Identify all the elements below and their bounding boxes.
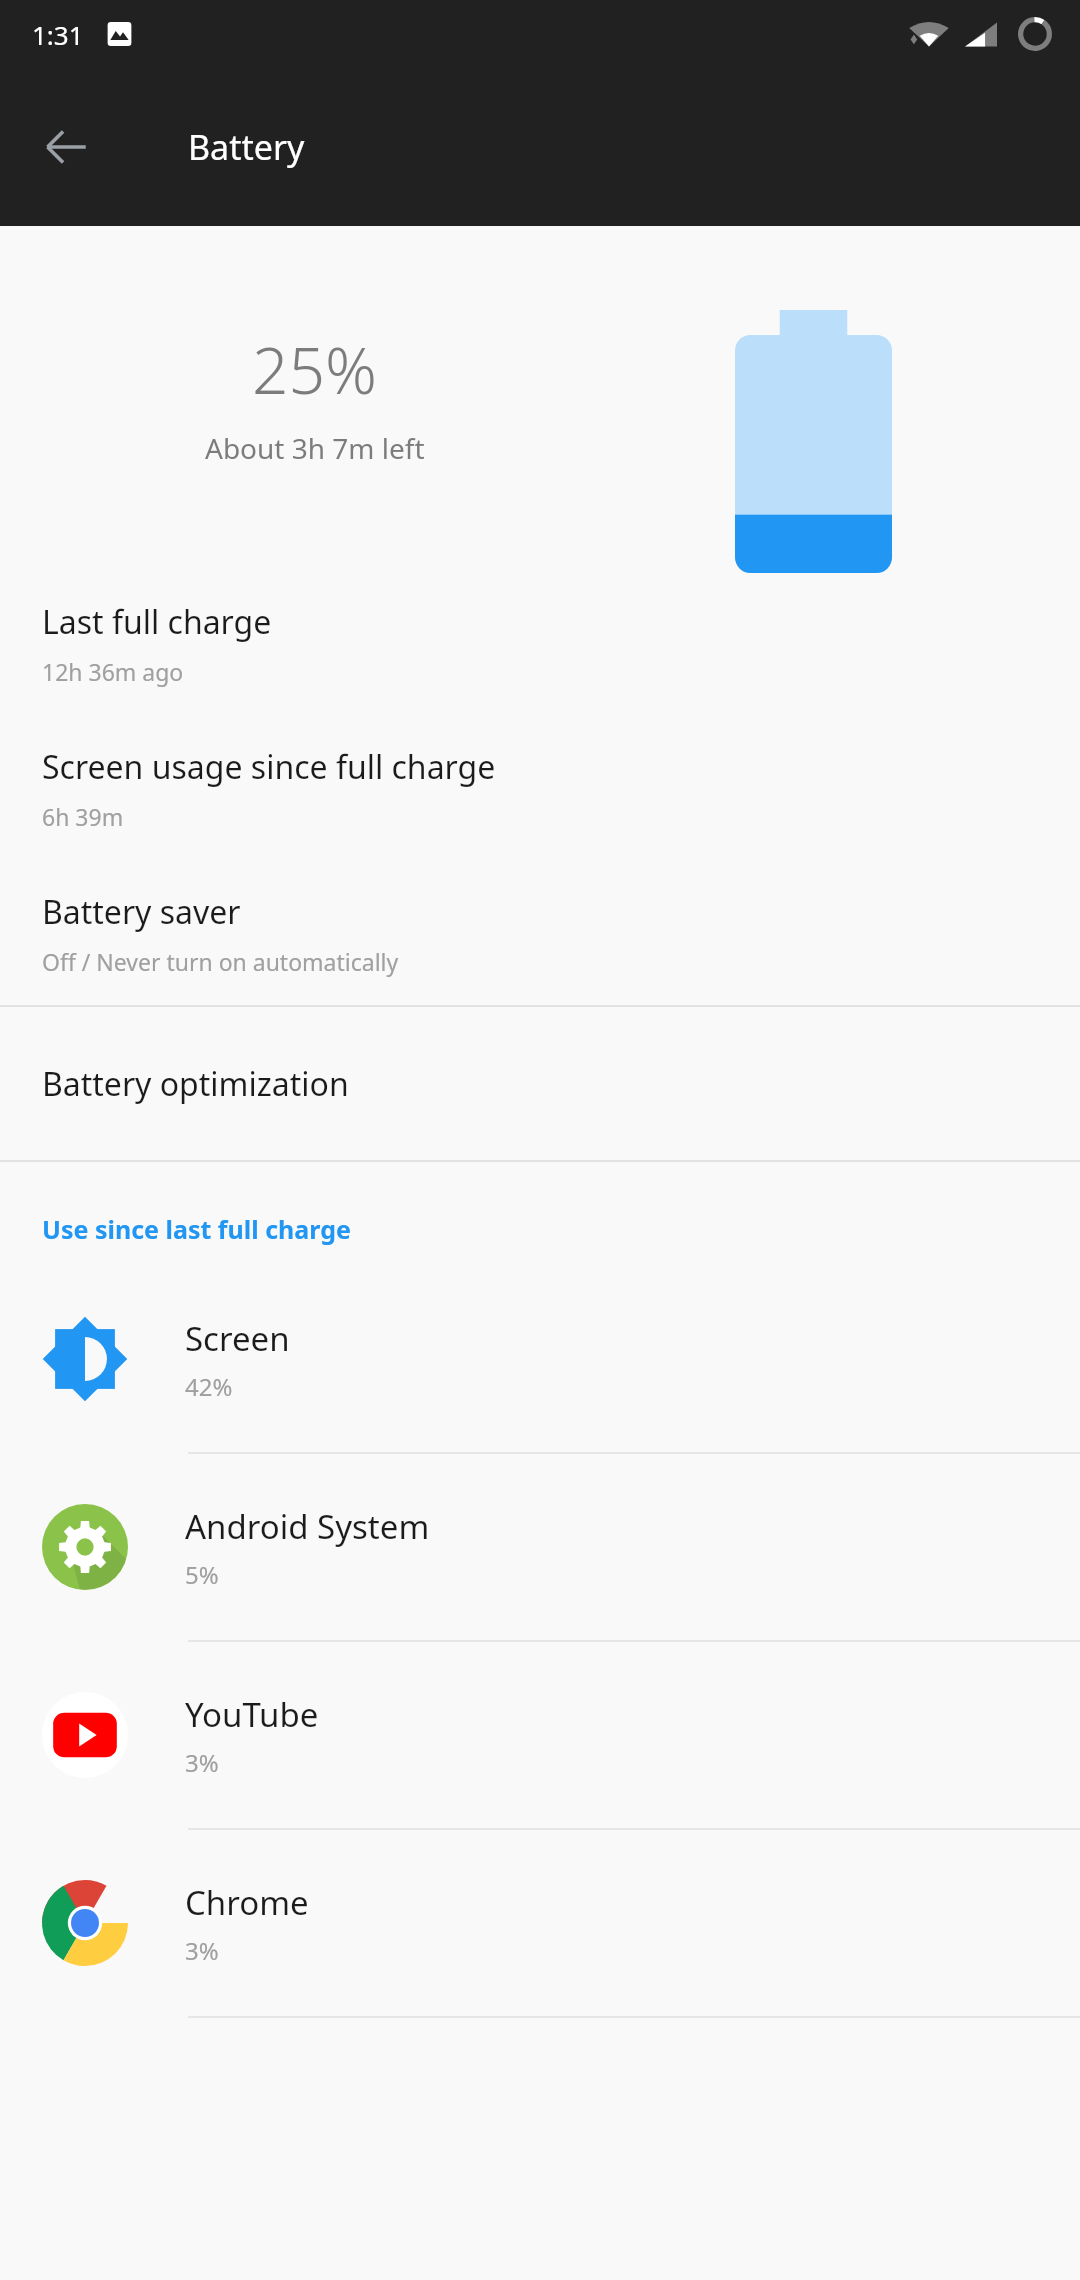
staticText: Last full charge [42, 600, 272, 644]
button[interactable]: Chrome [0, 1830, 1080, 2018]
staticText: Chrome [185, 1880, 309, 1925]
button[interactable]: Screen [0, 1266, 1080, 1454]
staticText: 5% [185, 1558, 219, 1591]
button[interactable]: Back [28, 109, 104, 185]
button[interactable]: Battery optimization [0, 1007, 1080, 1160]
staticText: 1:31 [32, 17, 84, 52]
button[interactable]: Battery saver [0, 832, 1080, 977]
button[interactable]: YouTube [0, 1642, 1080, 1830]
staticText: YouTube [185, 1692, 319, 1737]
staticText: 25% [252, 326, 378, 413]
staticText: Use since last full charge [42, 1212, 351, 1246]
staticText: Screen usage since full charge [42, 745, 496, 789]
staticText: Screen [185, 1316, 290, 1361]
staticText: Battery optimization [42, 1062, 349, 1106]
staticText: Battery [188, 124, 305, 170]
staticText: 3% [185, 1746, 219, 1779]
staticText: 3% [185, 1934, 219, 1967]
button[interactable]: Android System [0, 1454, 1080, 1642]
staticText: 12h 36m ago [42, 656, 184, 687]
staticText: About 3h 7m left [205, 429, 425, 467]
staticText: 42% [185, 1370, 233, 1403]
staticText: 6h 39m [42, 801, 124, 832]
button[interactable]: Screen usage since full charge [0, 687, 1080, 832]
staticText: Off / Never turn on automatically [42, 946, 399, 977]
button[interactable]: Last full charge [0, 578, 1080, 687]
staticText: Battery saver [42, 890, 241, 934]
staticText: Android System [185, 1504, 430, 1549]
